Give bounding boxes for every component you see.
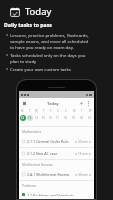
staticText: Today bbox=[25, 5, 52, 18]
staticText: Daily tasks to pass bbox=[4, 21, 52, 28]
button[interactable]: W bbox=[86, 109, 94, 121]
staticText: 17 bbox=[56, 116, 60, 120]
button[interactable]: 2.1.1 General Order Rule bbox=[19, 136, 94, 147]
staticText: S bbox=[65, 109, 67, 113]
staticText: 2.1 Problems and Handouts bbox=[27, 193, 74, 196]
staticText: 20 min bbox=[78, 140, 88, 144]
staticText: T bbox=[43, 109, 45, 113]
button[interactable]: S bbox=[62, 109, 70, 121]
staticText: 15 min bbox=[78, 152, 88, 156]
staticText: 2.1.1 General Order Rule bbox=[27, 139, 69, 144]
button[interactable]: T bbox=[78, 109, 86, 121]
staticText: 12 bbox=[21, 116, 25, 120]
staticText: S bbox=[57, 109, 59, 113]
staticText: T bbox=[81, 109, 83, 113]
staticText: W bbox=[89, 109, 92, 113]
button[interactable]: M bbox=[70, 109, 78, 121]
button[interactable]: 2.1 Problems and Handouts bbox=[19, 190, 94, 199]
staticText: Multiformat Reviews bbox=[22, 163, 53, 167]
button[interactable]: S bbox=[54, 109, 62, 121]
staticText: 20 bbox=[80, 116, 84, 120]
staticText: Problems bbox=[22, 184, 37, 188]
staticText: 15 bbox=[42, 116, 46, 120]
staticText: 30 min bbox=[78, 173, 88, 177]
staticText: 21 bbox=[88, 116, 92, 120]
staticText: M bbox=[21, 109, 24, 113]
staticText: 16 bbox=[49, 116, 53, 120]
button[interactable]: F bbox=[47, 109, 54, 121]
button[interactable]: 2.1.2 Non-AC case bbox=[19, 148, 94, 159]
staticText: Create your own custom tasks bbox=[10, 66, 71, 72]
staticText: 19 bbox=[72, 116, 76, 120]
staticText: 18 bbox=[64, 116, 68, 120]
button[interactable]: W bbox=[33, 109, 40, 121]
staticText: 2.A.1 Multiformat Review bbox=[27, 172, 70, 177]
staticText: 2.1.2 Non-AC case bbox=[27, 151, 58, 156]
staticText: 13 bbox=[28, 116, 32, 120]
button[interactable]: Add task bbox=[78, 100, 85, 107]
staticText: Tasks scheduled only on the days you pla… bbox=[10, 52, 92, 64]
staticText: F bbox=[50, 109, 52, 113]
staticText: M bbox=[73, 109, 76, 113]
button[interactable]: T bbox=[26, 109, 33, 121]
staticText: W bbox=[35, 109, 38, 113]
staticText: 14 bbox=[35, 116, 39, 120]
staticText: T bbox=[29, 109, 31, 113]
button[interactable]: 2.A.1 Multiformat Review bbox=[19, 169, 94, 180]
button[interactable]: M bbox=[19, 109, 26, 121]
staticText: Lessons, practice problems, flashcards, … bbox=[10, 32, 92, 50]
button[interactable]: Menu bbox=[21, 100, 28, 107]
button[interactable]: More options bbox=[85, 100, 92, 107]
staticText: Mathematics bbox=[22, 130, 42, 134]
staticText: Today bbox=[47, 101, 59, 107]
button[interactable]: T bbox=[40, 109, 47, 121]
